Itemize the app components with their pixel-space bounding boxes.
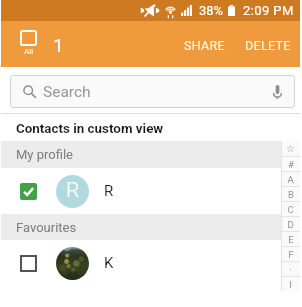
staticText: K xyxy=(104,254,114,272)
button[interactable]: SHARE xyxy=(176,21,233,67)
staticText: A xyxy=(287,174,294,185)
staticText: I xyxy=(289,279,292,290)
other: Voice search xyxy=(272,84,283,100)
button[interactable]: K xyxy=(1,240,300,286)
staticText: ☆ xyxy=(286,143,295,154)
button[interactable]: D xyxy=(281,217,300,231)
staticText: E xyxy=(288,234,294,245)
button[interactable]: A xyxy=(281,172,300,186)
staticText: B xyxy=(288,189,294,200)
button[interactable]: Select all xyxy=(17,31,40,57)
staticText: My profile xyxy=(16,147,73,162)
staticText: D xyxy=(287,219,294,230)
button[interactable]: B xyxy=(281,187,300,201)
button[interactable]: R xyxy=(1,168,300,214)
staticText: All xyxy=(24,47,34,56)
staticText: F xyxy=(288,249,294,260)
button[interactable]: · xyxy=(281,262,300,276)
staticText: 1 xyxy=(53,34,64,56)
button[interactable]: # xyxy=(281,157,300,171)
button[interactable]: DELETE xyxy=(237,21,299,67)
button[interactable]: F xyxy=(281,247,300,261)
button[interactable]: E xyxy=(281,232,300,246)
button[interactable]: I xyxy=(281,277,300,291)
staticText: Search xyxy=(43,83,91,101)
staticText: # xyxy=(288,159,294,170)
button[interactable]: My profile xyxy=(1,141,300,168)
staticText: Favourites xyxy=(16,220,77,235)
staticText: C xyxy=(287,204,294,215)
staticText: DELETE xyxy=(245,38,291,53)
button[interactable]: C xyxy=(281,202,300,216)
staticText: · xyxy=(289,264,292,275)
button[interactable]: Search xyxy=(10,75,295,108)
staticText: SHARE xyxy=(184,38,225,53)
button[interactable]: ☆ xyxy=(281,141,300,156)
staticText: R xyxy=(104,182,114,200)
staticText: 2:09 PM xyxy=(243,3,294,18)
button[interactable]: Favourites xyxy=(1,214,300,240)
staticText: Contacts in custom view xyxy=(16,121,164,137)
staticText: 38% xyxy=(199,3,224,18)
staticText: R xyxy=(66,178,80,203)
